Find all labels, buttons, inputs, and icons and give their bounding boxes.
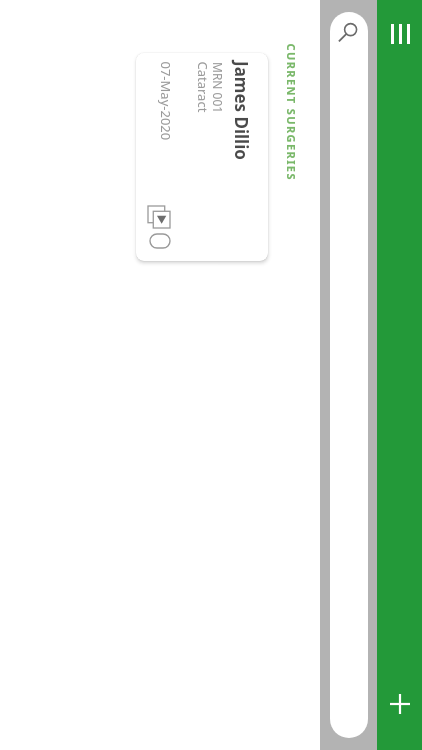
button[interactable]: More options — [150, 234, 170, 248]
staticText: 07-May-2020 — [156, 61, 174, 140]
button[interactable]: Menu — [386, 20, 414, 48]
staticText: Cataract — [193, 61, 211, 112]
other: Search — [339, 22, 359, 42]
button[interactable]: Search — [330, 12, 368, 738]
button[interactable]: Duplicate surgery — [148, 206, 170, 228]
button[interactable]: James Dillio — [136, 53, 268, 261]
staticText: MRN 001 — [210, 62, 226, 114]
button[interactable]: Add — [386, 690, 414, 718]
staticText: James Dillio — [230, 61, 253, 160]
staticText: CURRENT SURGERIES — [283, 43, 298, 181]
